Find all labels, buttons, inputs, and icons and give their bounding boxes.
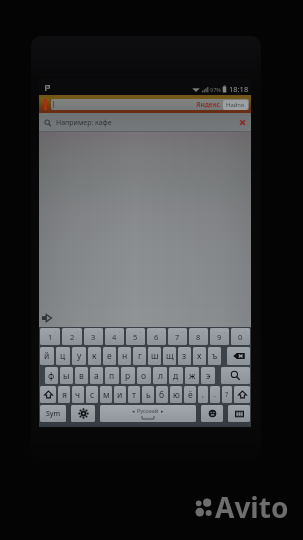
staticText: · [77,329,79,336]
button[interactable]: 5 [126,328,145,345]
other: Voice search [239,119,246,126]
button[interactable]: г [133,347,146,365]
staticText: 1 [48,332,53,342]
staticText: б [159,389,165,401]
staticText: · [224,329,226,336]
staticText: х [197,350,202,362]
staticText: 0 [238,332,243,342]
button[interactable]: р [121,367,135,384]
staticText: ◂ [132,408,135,414]
button[interactable]: Например: кафе [39,113,251,132]
button[interactable]: и [114,386,126,403]
button[interactable]: у [72,347,86,365]
staticText: · [119,329,121,336]
staticText: 9 [217,332,222,342]
button[interactable]: т [128,386,140,403]
staticText: т [132,389,136,401]
button[interactable]: 7 [168,328,187,345]
button[interactable]: 0 [231,328,250,345]
button[interactable]: м [100,386,112,403]
staticText: щ [166,350,174,362]
staticText: Например: кафе [56,118,112,128]
button[interactable]: ъ [208,347,221,365]
staticText: · [98,329,100,336]
staticText: й [44,350,50,362]
button[interactable]: ю [170,386,182,403]
staticText: л [158,370,163,382]
button[interactable]: щ [163,347,176,365]
button[interactable] [40,386,56,403]
button[interactable]: е [103,347,116,365]
button[interactable]: й [40,347,54,365]
staticText: · [161,329,163,336]
button[interactable]: х [193,347,206,365]
staticText: ф [48,370,55,382]
button[interactable]: Sym [40,405,66,422]
button[interactable]: 4 [105,328,124,345]
button[interactable]: э [201,367,215,384]
button[interactable] [234,386,250,403]
button[interactable]: к [88,347,101,365]
button[interactable]: ◂ [100,405,196,422]
button[interactable]: в [75,367,88,384]
button[interactable]: ё [184,386,196,403]
staticText: э [206,370,211,382]
button[interactable]: ц [56,347,70,365]
staticText: я [62,389,67,401]
button[interactable]: д [169,367,183,384]
button[interactable]: 2 [62,328,82,345]
staticText: ш [151,350,159,362]
staticText: ж [189,370,196,382]
button[interactable]: ж [185,367,199,384]
button[interactable]: ? [222,386,232,403]
staticText: · [55,329,57,336]
staticText: и [117,389,123,401]
staticText: 5 [133,332,138,342]
button[interactable]: п [105,367,119,384]
button[interactable]: ш [148,347,161,365]
staticText: , [202,390,204,400]
staticText: 8 [196,332,201,342]
button[interactable] [228,405,250,422]
staticText: 97% [210,86,221,93]
staticText: ▸ [161,408,164,414]
button[interactable]: 8 [189,328,208,345]
staticText: 6 [154,332,159,342]
button[interactable]: 1 [40,328,60,345]
button[interactable]: Search [221,367,250,384]
button[interactable]: Backspace [227,347,250,365]
staticText: 4 [112,332,117,342]
button[interactable] [201,405,223,422]
button[interactable]: . [210,386,220,403]
staticText: к [92,350,97,362]
button[interactable]: ф [45,367,58,384]
button[interactable]: , [198,386,208,403]
staticText: е [107,350,112,362]
button[interactable]: 9 [210,328,229,345]
button[interactable] [71,405,95,422]
button[interactable]: Яндекс [51,99,249,110]
button[interactable]: я [58,386,70,403]
button[interactable]: а [90,367,103,384]
button[interactable]: с [86,386,98,403]
staticText: у [77,350,82,362]
button[interactable]: о [137,367,151,384]
staticText: а [94,370,99,382]
staticText: Avito [215,488,289,526]
button[interactable]: ы [60,367,73,384]
button[interactable]: з [178,347,191,365]
staticText: г [138,350,142,362]
button[interactable]: л [153,367,167,384]
staticText: м [103,389,110,401]
button[interactable]: б [156,386,168,403]
button[interactable]: 3 [84,328,103,345]
button[interactable]: н [118,347,131,365]
button[interactable]: ь [142,386,154,403]
staticText: 7 [175,332,180,342]
button[interactable]: ч [72,386,84,403]
button[interactable]: 6 [147,328,166,345]
staticText: ъ [212,350,218,362]
button[interactable]: Найти [223,100,248,110]
staticText: ц [60,350,66,362]
staticText: ы [63,370,70,382]
